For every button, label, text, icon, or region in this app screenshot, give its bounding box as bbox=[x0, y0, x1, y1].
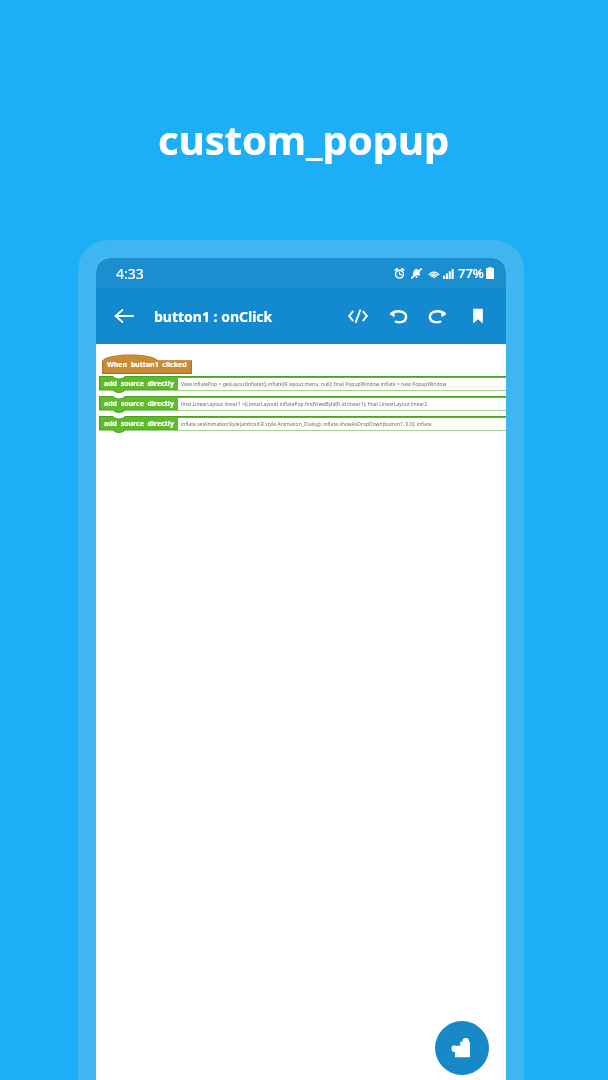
button[interactable]: Back bbox=[106, 298, 142, 334]
staticText: final LinearLayout linear1 =(LinearLayou… bbox=[181, 401, 428, 408]
staticText: When button1 clicked bbox=[107, 360, 187, 370]
button[interactable]: When button1 clicked bbox=[102, 352, 192, 374]
staticText: add source directly bbox=[104, 399, 174, 409]
staticText: button1 : onClick bbox=[154, 307, 273, 326]
button[interactable]: Bookmark bbox=[460, 298, 496, 334]
staticText: 77% bbox=[458, 264, 484, 282]
button[interactable]: Redo bbox=[420, 298, 456, 334]
staticText: View inflatePop = getLayoutInflater().in… bbox=[181, 381, 447, 388]
staticText: add source directly bbox=[104, 379, 174, 389]
button[interactable]: View source code bbox=[340, 298, 376, 334]
button[interactable]: add source directly bbox=[99, 414, 506, 433]
button[interactable]: Add block bbox=[435, 1021, 489, 1075]
staticText: inflate.setAnimationStyle(android.R.styl… bbox=[181, 421, 432, 428]
button[interactable]: Undo bbox=[380, 298, 416, 334]
button[interactable]: add source directly bbox=[99, 394, 506, 413]
staticText: add source directly bbox=[104, 419, 174, 429]
button[interactable]: add source directly bbox=[99, 374, 506, 393]
staticText: custom_popup bbox=[158, 112, 450, 166]
staticText: 4:33 bbox=[116, 264, 144, 283]
